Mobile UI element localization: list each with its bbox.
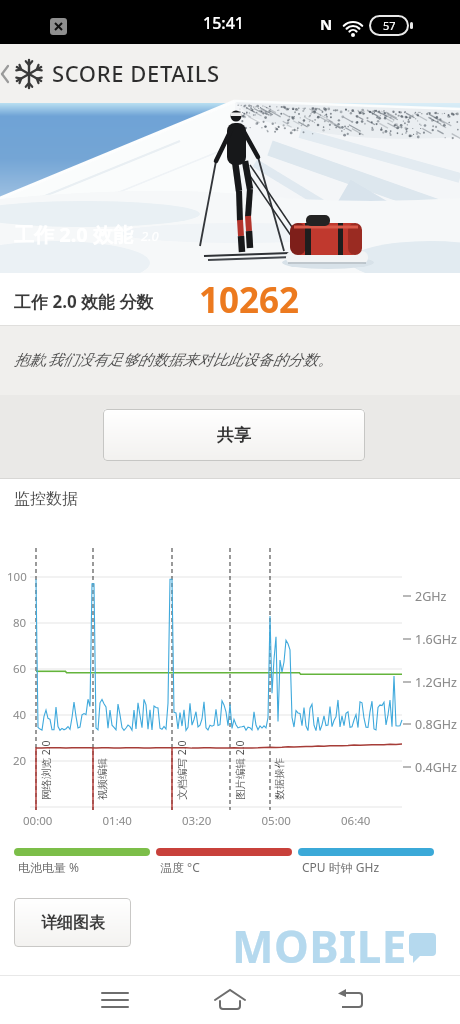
- staticText: 共享: [217, 425, 251, 446]
- button[interactable]: [91, 975, 139, 1024]
- button[interactable]: [206, 975, 254, 1024]
- button[interactable]: SCORE DETAILS: [0, 44, 460, 103]
- staticText: 详细图表: [41, 913, 105, 933]
- staticText: 57: [383, 18, 396, 33]
- staticText: 15:41: [203, 12, 244, 34]
- staticText: MOBILE: [232, 916, 407, 976]
- staticText: 监控数据: [14, 489, 78, 509]
- staticText: SCORE DETAILS: [52, 58, 220, 88]
- button[interactable]: 详细图表: [14, 898, 131, 947]
- staticText: 工作 2.0 效能: [14, 221, 133, 248]
- staticText: 2.0: [141, 227, 159, 245]
- staticText: 抱歉,我们没有足够的数据来对比此设备的分数。: [14, 349, 333, 369]
- staticText: 工作 2.0 效能 分数: [14, 290, 154, 313]
- staticText: 10262: [199, 276, 300, 324]
- button[interactable]: 共享: [103, 409, 365, 461]
- staticText: N: [320, 14, 333, 34]
- button[interactable]: [327, 975, 375, 1024]
